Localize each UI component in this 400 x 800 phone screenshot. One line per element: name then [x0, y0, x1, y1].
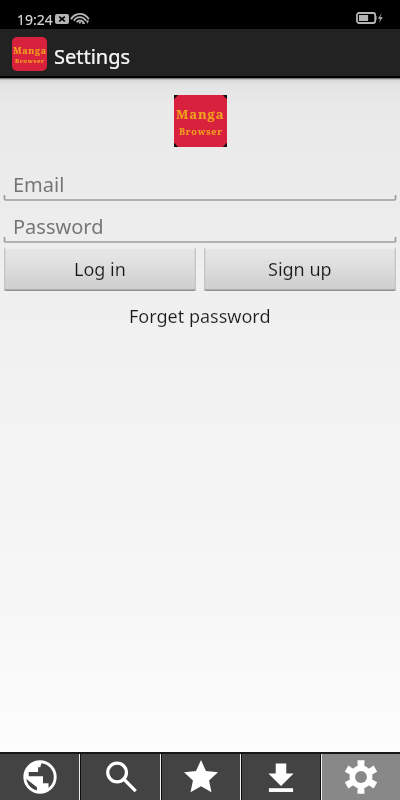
staticText: 19:24 [17, 10, 53, 29]
button[interactable]: Sign up [204, 247, 396, 291]
staticText: Manga [176, 105, 225, 123]
button[interactable]: Forget password [123, 301, 277, 332]
button[interactable]: App icon [12, 37, 47, 71]
button[interactable]: Log in [4, 247, 196, 291]
staticText: Browser [15, 57, 45, 65]
staticText: Forget password [129, 304, 271, 329]
staticText: Email [13, 171, 65, 198]
staticText: Sign up [268, 257, 332, 282]
staticText: Settings [54, 43, 131, 70]
staticText: Password [13, 213, 104, 240]
staticText: Manga [13, 44, 47, 56]
button[interactable]: Downloads [242, 754, 320, 800]
button[interactable]: Browse [0, 754, 79, 800]
button[interactable]: Search [81, 754, 160, 800]
button[interactable]: Settings [322, 754, 400, 800]
button[interactable]: Email [0, 78, 400, 207]
button[interactable]: Password [0, 78, 400, 249]
staticText: Browser [179, 125, 223, 137]
staticText: Log in [74, 257, 126, 282]
button[interactable]: Favorites [162, 754, 240, 800]
